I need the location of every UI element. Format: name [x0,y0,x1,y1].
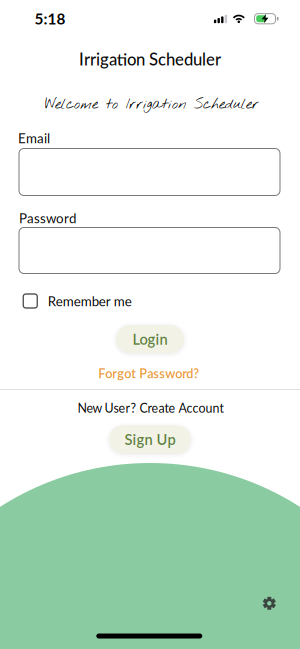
staticText: Remember me [48,293,132,309]
staticText: Sign Up [124,431,175,448]
button[interactable]: Email [19,148,280,195]
button[interactable]: Login [116,325,184,353]
button[interactable]: Settings [258,592,281,615]
staticText: Login [132,330,167,348]
button[interactable]: Password [19,227,280,273]
button[interactable]: Forgot Password? [98,366,199,381]
staticText: Email [18,130,50,146]
staticText: 5:18 [34,9,65,28]
button[interactable]: Sign Up [109,425,191,453]
staticText: Password [19,210,76,226]
button[interactable]: Remember me [23,293,132,309]
staticText: Forgot Password? [98,366,199,381]
staticText: Irrigation Scheduler [79,49,221,69]
staticText: New User? Create Account [77,401,223,415]
staticText: Welcome to Irrigation Scheduler [45,95,259,114]
